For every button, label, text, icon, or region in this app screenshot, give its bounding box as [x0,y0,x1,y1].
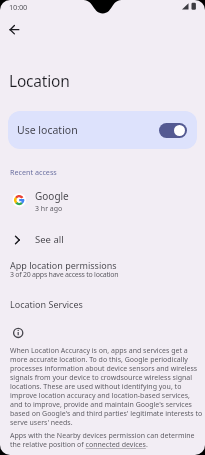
button[interactable]: App location permissions [0,255,205,285]
staticText: based on Google's and third parties' leg… [10,409,203,419]
staticText: serve users' needs. [10,418,73,428]
staticText: more accurate location. To do this, Goog… [10,355,188,365]
staticText: 3 hr ago [35,204,63,214]
staticText: Location Services [10,298,83,310]
staticText: 10:00 [9,2,28,12]
staticText: Use location [17,123,78,137]
staticText: processes information about device senso… [10,364,198,374]
staticText: 3 of 20 apps have access to location [10,270,119,280]
staticText: Location [9,70,70,91]
staticText: locations. These are used without identi… [10,382,182,392]
staticText: and to improve, provide and maintain Goo… [10,400,192,410]
button[interactable]: Use location [8,111,197,149]
button[interactable]: Google [0,186,205,213]
staticText: See all [35,233,64,246]
staticText: signals from your device to crowdsource … [10,373,193,383]
staticText: Google [35,189,69,203]
button[interactable]: Location Services [0,291,205,315]
staticText: improve location accuracy and location-b… [10,391,190,401]
staticText: Recent access [10,167,57,177]
button[interactable]: the relative position of connected devic… [10,440,148,450]
staticText: When Location Accuracy is on, apps and s… [10,346,188,356]
staticText: Apps with the Nearby devices permission … [10,431,195,441]
button[interactable] [4,19,25,40]
button[interactable] [159,123,187,138]
staticText: App location permissions [10,259,117,271]
button[interactable]: See all [0,229,205,251]
